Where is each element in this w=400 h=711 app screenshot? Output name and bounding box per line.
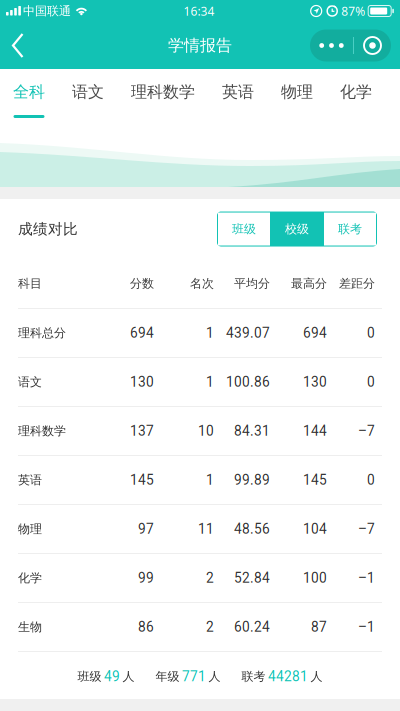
staticText: 84.31 [234, 423, 270, 439]
button[interactable]: 英语 [222, 69, 254, 122]
staticText: 97 [138, 521, 154, 537]
staticText: 1 [206, 374, 214, 390]
staticText: 校级 [285, 222, 309, 236]
staticText: 理科数学 [18, 424, 66, 438]
staticText: 英语 [222, 82, 254, 102]
staticText: 145 [130, 472, 154, 488]
staticText: 0 [367, 325, 375, 341]
staticText: 联考 [338, 222, 362, 236]
staticText: 平均分 [234, 276, 270, 291]
staticText: 差距分 [339, 276, 375, 291]
staticText: 100 [303, 570, 327, 586]
staticText: 104 [303, 521, 327, 537]
staticText: –1 [358, 619, 375, 635]
staticText: 全科 [13, 82, 45, 102]
staticText: –7 [358, 521, 375, 537]
staticText: 联考 [241, 669, 265, 684]
staticText: 130 [303, 374, 327, 390]
staticText: 86 [138, 619, 154, 635]
staticText: 语文 [72, 82, 104, 102]
staticText: 49 [104, 668, 120, 685]
staticText: 130 [130, 374, 154, 390]
staticText: 145 [303, 472, 327, 488]
button[interactable]: 理科数学 [131, 69, 195, 122]
staticText: 1 [206, 325, 214, 341]
staticText: 语文 [18, 375, 42, 389]
staticText: 理科总分 [18, 326, 66, 340]
staticText: 99.89 [234, 472, 270, 488]
staticText: 成绩对比 [18, 220, 78, 238]
staticText: 2 [206, 570, 214, 586]
staticText: 年级 [155, 669, 179, 684]
staticText: 英语 [18, 473, 42, 487]
staticText: 班级 [77, 669, 101, 684]
staticText: 48.56 [234, 521, 270, 537]
staticText: 0 [367, 374, 375, 390]
staticText: 16:34 [183, 3, 214, 19]
staticText: 99 [138, 570, 154, 586]
staticText: 化学 [340, 82, 372, 102]
button[interactable]: 返回 [0, 22, 36, 69]
button[interactable]: 全科 [13, 69, 45, 122]
button[interactable]: 化学 [340, 69, 372, 122]
staticText: 科目 [18, 276, 42, 291]
button[interactable]: 校级 [270, 212, 324, 245]
button[interactable]: 联考 [324, 212, 376, 245]
staticText: 771 [182, 668, 206, 685]
button[interactable]: 更多功能 [310, 29, 391, 61]
staticText: 生物 [18, 620, 42, 634]
staticText: 物理 [281, 82, 313, 102]
button[interactable]: 班级 [218, 212, 270, 245]
staticText: 物理 [18, 522, 42, 536]
staticText: 中国联通 [23, 4, 71, 18]
staticText: 144 [303, 423, 327, 439]
button[interactable]: 物理 [281, 69, 313, 122]
staticText: 人 [310, 669, 322, 684]
staticText: 名次 [190, 276, 214, 291]
staticText: 学情报告 [168, 36, 232, 55]
staticText: 60.24 [234, 619, 270, 635]
staticText: 理科数学 [131, 82, 195, 102]
staticText: 11 [198, 521, 214, 537]
staticText: 439.07 [226, 325, 270, 341]
staticText: 人 [122, 669, 134, 684]
staticText: 44281 [268, 668, 308, 685]
button[interactable]: 语文 [72, 69, 104, 122]
staticText: 分数 [130, 276, 154, 291]
staticText: 87 [311, 619, 327, 635]
staticText: –7 [358, 423, 375, 439]
staticText: 694 [303, 325, 327, 341]
staticText: 班级 [232, 222, 256, 236]
staticText: 2 [206, 619, 214, 635]
staticText: 100.86 [226, 374, 270, 390]
staticText: 87% [341, 3, 365, 19]
staticText: 最高分 [291, 276, 327, 291]
staticText: 10 [198, 423, 214, 439]
staticText: 化学 [18, 571, 42, 585]
staticText: 137 [130, 423, 154, 439]
staticText: 694 [130, 325, 154, 341]
staticText: –1 [358, 570, 375, 586]
staticText: 0 [367, 472, 375, 488]
staticText: 1 [206, 472, 214, 488]
staticText: 人 [208, 669, 220, 684]
staticText: 52.84 [234, 570, 270, 586]
